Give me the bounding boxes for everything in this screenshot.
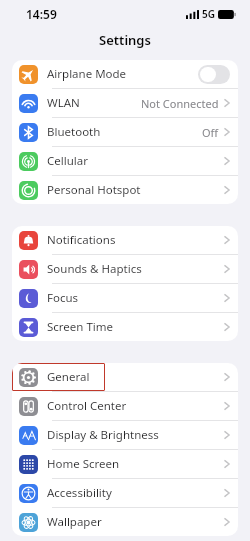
- button[interactable]: Home Screen: [12, 450, 238, 478]
- staticText: Personal Hotspot: [47, 182, 141, 198]
- staticText: Not Connected: [141, 96, 219, 111]
- button[interactable]: Airplane Mode: [12, 60, 238, 88]
- button[interactable]: Airplane Mode toggle: [198, 65, 230, 84]
- button[interactable]: Display & Brightness: [12, 421, 238, 449]
- staticText: 5G: [202, 7, 215, 21]
- staticText: Sounds & Haptics: [47, 261, 142, 277]
- button[interactable]: Bluetooth: [12, 118, 238, 146]
- button[interactable]: General: [12, 363, 238, 391]
- staticText: Screen Time: [47, 319, 114, 335]
- button[interactable]: Wallpaper: [12, 508, 238, 536]
- staticText: Focus: [47, 290, 79, 306]
- button[interactable]: Control Center: [12, 392, 238, 420]
- staticText: WLAN: [47, 95, 80, 111]
- button[interactable]: Sounds & Haptics: [12, 255, 238, 283]
- staticText: Control Center: [47, 398, 127, 414]
- staticText: Notifications: [47, 232, 116, 248]
- button[interactable]: Screen Time: [12, 313, 238, 341]
- staticText: Airplane Mode: [47, 66, 127, 82]
- staticText: Off: [202, 125, 219, 140]
- staticText: General: [47, 369, 90, 385]
- button[interactable]: Personal Hotspot: [12, 176, 238, 204]
- button[interactable]: Notifications: [12, 226, 238, 254]
- button[interactable]: Accessibility: [12, 479, 238, 507]
- staticText: Settings: [99, 31, 151, 49]
- staticText: Wallpaper: [47, 514, 102, 530]
- staticText: Accessibility: [47, 485, 112, 501]
- staticText: Display & Brightness: [47, 427, 159, 443]
- staticText: Home Screen: [47, 456, 120, 472]
- staticText: Bluetooth: [47, 124, 101, 140]
- button[interactable]: Focus: [12, 284, 238, 312]
- staticText: 14:59: [26, 6, 57, 22]
- button[interactable]: Cellular: [12, 147, 238, 175]
- staticText: Cellular: [47, 153, 88, 169]
- button[interactable]: WLAN: [12, 89, 238, 117]
